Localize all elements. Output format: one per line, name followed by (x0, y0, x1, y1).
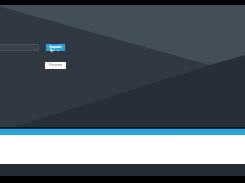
staticText: Preview Scan (45, 62, 66, 69)
button[interactable]: Preview Scan (45, 62, 66, 69)
button[interactable]: Import Roll (46, 44, 65, 51)
button[interactable]: Search field (0, 44, 39, 51)
staticText: Import Roll (46, 44, 65, 51)
other: Pointer (50, 48, 53, 53)
